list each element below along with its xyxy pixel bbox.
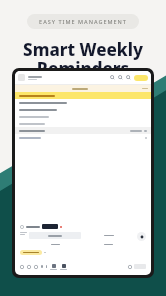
button[interactable] xyxy=(15,134,151,141)
staticText: EASY TIME MANAGEMENT xyxy=(39,18,127,25)
button[interactable]: Settings xyxy=(128,265,132,269)
button[interactable]: Filter xyxy=(126,75,131,80)
button[interactable]: Add xyxy=(137,232,146,241)
button[interactable]: App menu xyxy=(18,74,25,81)
button[interactable] xyxy=(15,120,151,127)
button[interactable] xyxy=(15,99,151,106)
button[interactable]: Tool 0 xyxy=(20,265,24,269)
button[interactable] xyxy=(82,241,135,248)
button[interactable] xyxy=(20,250,42,255)
button[interactable]: Share xyxy=(134,75,148,81)
staticText: Smart Weekly Reminders xyxy=(0,38,166,80)
button[interactable]: Due date xyxy=(42,224,58,229)
button[interactable]: EASY TIME MANAGEMENT xyxy=(27,14,139,29)
button[interactable]: Tool 2 xyxy=(34,265,38,269)
button[interactable]: Reminder xyxy=(60,264,67,270)
button[interactable] xyxy=(29,232,81,239)
button[interactable] xyxy=(15,113,151,120)
button[interactable] xyxy=(15,106,151,113)
button[interactable]: Calendar xyxy=(50,264,57,270)
button[interactable]: Notifications xyxy=(118,75,123,80)
button[interactable] xyxy=(82,232,135,239)
button[interactable]: Search xyxy=(110,75,115,80)
button[interactable] xyxy=(15,127,151,134)
button[interactable]: Tool 1 xyxy=(27,265,31,269)
button[interactable] xyxy=(15,92,151,99)
button[interactable] xyxy=(29,241,81,248)
